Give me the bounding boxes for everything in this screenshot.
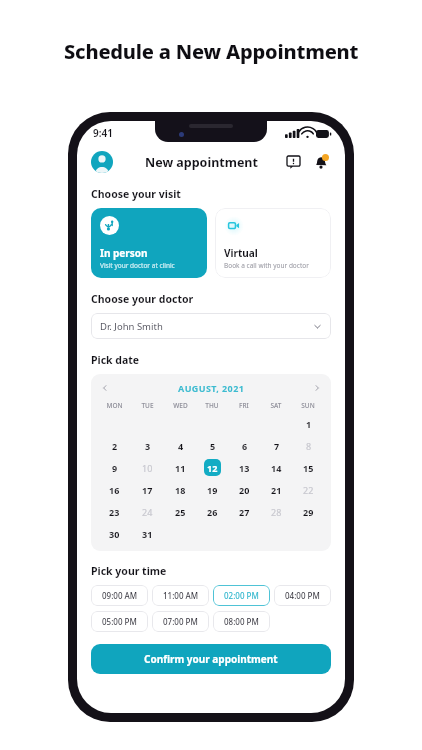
staticText: 11:00 AM	[163, 590, 199, 601]
button[interactable]: 17	[139, 481, 156, 498]
staticText: THU	[205, 401, 219, 410]
staticText: 29	[303, 506, 314, 518]
staticText: 27	[239, 506, 250, 518]
staticText: 08:00 PM	[224, 616, 259, 627]
staticText: Virtual	[224, 246, 258, 260]
staticText: 5	[210, 440, 216, 452]
staticText: 3	[145, 440, 151, 452]
staticText: 11	[175, 462, 186, 474]
staticText: 21	[271, 484, 282, 496]
staticText: 9	[112, 462, 118, 474]
button[interactable]: Dr. John Smith	[91, 313, 331, 339]
button[interactable]: Notifications	[311, 152, 331, 172]
staticText: WED	[173, 401, 188, 410]
button[interactable]: Virtual	[215, 208, 331, 278]
button[interactable]: 11:00 AM	[152, 585, 209, 606]
staticText: 13	[239, 462, 250, 474]
staticText: 30	[109, 528, 120, 540]
button[interactable]: 16	[106, 481, 123, 498]
button[interactable]: 20	[236, 481, 253, 498]
button[interactable]: 19	[204, 481, 221, 498]
button[interactable]: Messages	[284, 153, 302, 171]
staticText: 15	[303, 462, 314, 474]
staticText: 09:00 AM	[102, 590, 138, 601]
staticText: 16	[109, 484, 120, 496]
button[interactable]: 28	[268, 503, 285, 520]
staticText: MON	[106, 401, 123, 410]
button[interactable]: 05:00 PM	[91, 611, 148, 632]
staticText: 2	[112, 440, 118, 452]
staticText: Choose your doctor	[91, 292, 194, 306]
staticText: 02:00 PM	[224, 590, 259, 601]
staticText: Schedule a New Appointment	[64, 38, 359, 65]
button[interactable]: 08:00 PM	[213, 611, 270, 632]
staticText: 8	[306, 440, 312, 452]
button[interactable]: 7	[268, 437, 285, 454]
button[interactable]: 12	[204, 459, 221, 476]
staticText: Choose your visit	[91, 187, 181, 201]
staticText: 25	[175, 506, 186, 518]
staticText: 24	[142, 506, 153, 518]
button[interactable]: 04:00 PM	[274, 585, 331, 606]
button[interactable]: 18	[172, 481, 189, 498]
button[interactable]: 11	[172, 459, 189, 476]
button[interactable]: 9	[106, 459, 123, 476]
button[interactable]: Next month	[310, 381, 324, 395]
staticText: 1	[306, 418, 312, 430]
button[interactable]: 24	[139, 503, 156, 520]
button[interactable]: 22	[300, 481, 317, 498]
button[interactable]: 25	[172, 503, 189, 520]
staticText: TUE	[141, 401, 154, 410]
staticText: 10	[142, 462, 153, 474]
staticText: 04:00 PM	[285, 590, 320, 601]
staticText: 05:00 PM	[102, 616, 137, 627]
button[interactable]: 4	[172, 437, 189, 454]
button[interactable]: 3	[139, 437, 156, 454]
staticText: 17	[142, 484, 153, 496]
staticText: 9:41	[93, 126, 113, 140]
button[interactable]: Previous month	[98, 381, 112, 395]
staticText: SAT	[270, 401, 282, 410]
button[interactable]: 13	[236, 459, 253, 476]
button[interactable]: 30	[106, 525, 123, 542]
button[interactable]: 5	[204, 437, 221, 454]
button[interactable]: 26	[204, 503, 221, 520]
button[interactable]: 23	[106, 503, 123, 520]
staticText: New appointment	[145, 154, 258, 171]
staticText: In person	[100, 246, 148, 260]
button[interactable]: In person	[91, 208, 207, 278]
staticText: 14	[271, 462, 282, 474]
button[interactable]: 02:00 PM	[213, 585, 270, 606]
staticText: Pick date	[91, 353, 140, 367]
staticText: 20	[239, 484, 250, 496]
staticText: 6	[242, 440, 248, 452]
staticText: 31	[142, 528, 153, 540]
button[interactable]: 29	[300, 503, 317, 520]
button[interactable]: 27	[236, 503, 253, 520]
staticText: 23	[109, 506, 120, 518]
staticText: SUN	[301, 401, 315, 410]
button[interactable]: Profile	[91, 151, 113, 173]
button[interactable]: 31	[139, 525, 156, 542]
staticText: 28	[271, 506, 282, 518]
staticText: Dr. John Smith	[100, 320, 313, 333]
button[interactable]: 15	[300, 459, 317, 476]
button[interactable]: 1	[300, 415, 317, 432]
staticText: Pick your time	[91, 564, 167, 578]
button[interactable]: 10	[139, 459, 156, 476]
button[interactable]: 21	[268, 481, 285, 498]
staticText: AUGUST, 2021	[178, 382, 245, 394]
staticText: 22	[303, 484, 314, 496]
staticText: 26	[207, 506, 218, 518]
button[interactable]: 2	[106, 437, 123, 454]
button[interactable]: 09:00 AM	[91, 585, 148, 606]
button[interactable]: 8	[300, 437, 317, 454]
staticText: 18	[175, 484, 186, 496]
staticText: FRI	[239, 401, 249, 410]
button[interactable]: 07:00 PM	[152, 611, 209, 632]
button[interactable]: Confirm your appointment	[91, 644, 331, 674]
button[interactable]: 14	[268, 459, 285, 476]
staticText: 07:00 PM	[163, 616, 198, 627]
staticText: Visit your doctor at clinic	[100, 261, 175, 270]
button[interactable]: 6	[236, 437, 253, 454]
